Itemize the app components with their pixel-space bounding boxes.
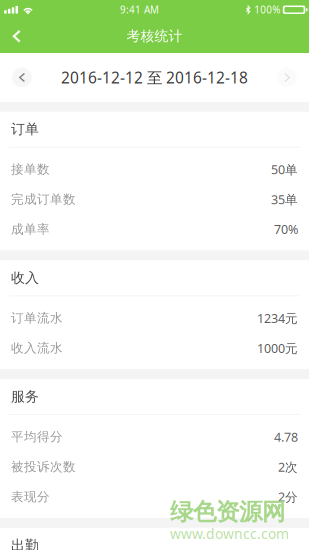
button[interactable]: Previous period: [0, 55, 44, 99]
staticText: 订单流水: [11, 310, 63, 326]
staticText: 1234元: [257, 310, 298, 327]
staticText: 成单率: [11, 221, 50, 237]
staticText: 服务: [11, 388, 39, 405]
staticText: 2次: [278, 458, 298, 475]
staticText: 4.78: [274, 428, 298, 445]
staticText: 9:41 AM: [120, 3, 159, 16]
staticText: 被投诉次数: [11, 459, 76, 475]
staticText: 考核统计: [126, 27, 182, 45]
staticText: 2分: [278, 488, 298, 505]
staticText: 收入: [11, 269, 39, 287]
staticText: 35单: [271, 191, 298, 208]
staticText: 接单数: [11, 162, 50, 177]
staticText: www.downcc.com: [170, 524, 289, 543]
staticText: 订单: [11, 120, 39, 138]
staticText: 出勤: [11, 537, 39, 550]
button[interactable]: Back: [0, 22, 39, 51]
staticText: 表现分: [11, 489, 50, 505]
staticText: 100%: [254, 3, 280, 16]
staticText: 平均得分: [11, 429, 63, 445]
staticText: 2016-12-12 至 2016-12-18: [61, 67, 248, 88]
staticText: 绿色资源网: [170, 497, 285, 527]
staticText: 50单: [271, 161, 298, 178]
staticText: 完成订单数: [11, 191, 76, 207]
staticText: 70%: [274, 221, 298, 238]
staticText: 1000元: [257, 339, 298, 357]
staticText: 收入流水: [11, 340, 63, 356]
